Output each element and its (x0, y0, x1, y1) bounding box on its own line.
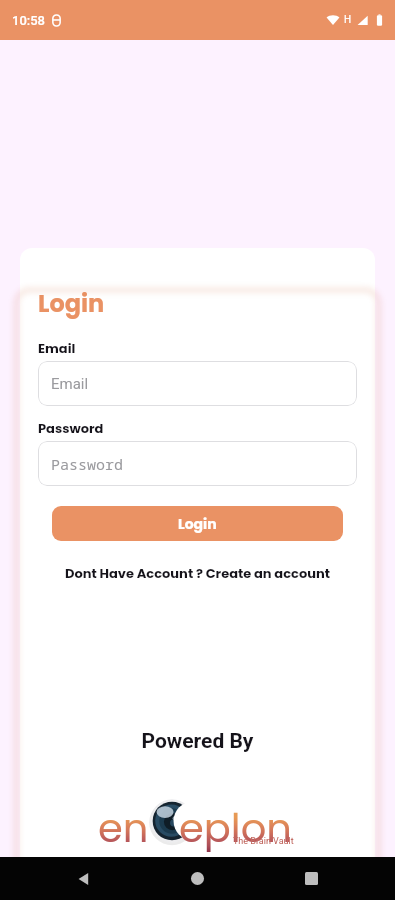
button[interactable]: Login (52, 506, 343, 541)
staticText: Password (38, 419, 104, 437)
staticText: Login (38, 287, 105, 321)
staticText: Email (51, 375, 89, 393)
staticText: en (98, 800, 149, 856)
staticText: Password (51, 454, 124, 474)
staticText: Email (38, 339, 76, 357)
staticText: Login (178, 514, 217, 534)
button[interactable]: Password (38, 441, 357, 486)
button[interactable]: Email (38, 361, 357, 406)
staticText: Powered By (20, 729, 375, 754)
button[interactable]: Back (76, 871, 92, 887)
button[interactable]: Dont Have Account ? Create an account (20, 564, 375, 582)
staticText: The Brain Vault (233, 836, 294, 847)
staticText: eplon (179, 800, 292, 856)
staticText: H (344, 14, 352, 26)
staticText: 10:58 (12, 13, 45, 28)
button[interactable]: Recents (305, 872, 318, 885)
staticText: Dont Have Account ? Create an account (65, 564, 330, 582)
button[interactable]: Home (190, 871, 205, 886)
